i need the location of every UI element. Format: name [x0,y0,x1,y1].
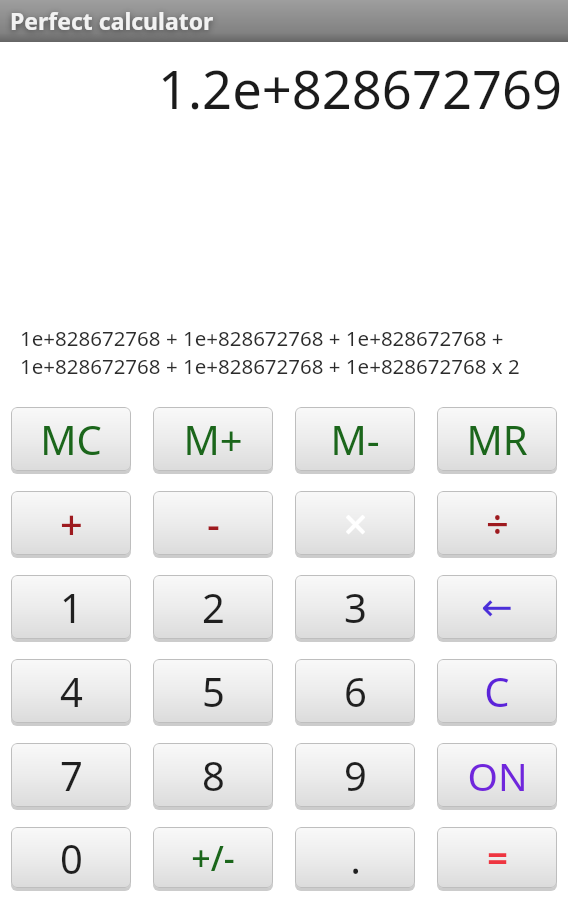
staticText: ON [467,749,528,802]
button[interactable]: 8 [153,743,273,807]
button[interactable]: 3 [295,575,415,639]
staticText: M- [330,412,380,466]
button[interactable]: 4 [11,659,131,723]
button[interactable]: × [295,491,415,555]
staticText: - [207,496,220,550]
staticText: ÷ [486,496,509,550]
staticText: MC [40,412,102,466]
staticText: 3 [344,580,367,634]
button[interactable]: M+ [153,407,273,471]
staticText: 4 [60,664,83,718]
button[interactable]: 6 [295,659,415,723]
staticText: 1 [60,580,83,634]
staticText: 1e+828672768 + 1e+828672768 + 1e+8286727… [20,352,520,380]
staticText: ← [481,585,513,629]
button[interactable]: ON [437,743,557,807]
staticText: Perfect calculator [10,5,214,36]
staticText: 1.2e+828672769 [158,53,563,125]
staticText: MR [466,412,528,466]
button[interactable]: ← [437,575,557,639]
staticText: 1e+828672768 + 1e+828672768 + 1e+8286727… [20,324,504,352]
button[interactable]: . [295,827,415,888]
staticText: M+ [183,412,243,466]
staticText: + [60,496,83,550]
staticText: C [484,664,510,718]
staticText: 5 [202,664,225,718]
staticText: 2 [202,580,225,634]
button[interactable]: MR [437,407,557,471]
staticText: 0 [60,831,83,885]
button[interactable]: +/- [153,827,273,888]
button[interactable]: MC [11,407,131,471]
button[interactable]: 0 [11,827,131,888]
staticText: 9 [344,748,367,802]
staticText: × [343,494,368,553]
button[interactable]: ÷ [437,491,557,555]
staticText: +/- [191,835,235,881]
button[interactable]: C [437,659,557,723]
staticText: 7 [60,748,83,802]
button[interactable]: + [11,491,131,555]
button[interactable]: 1 [11,575,131,639]
button[interactable]: 5 [153,659,273,723]
button[interactable]: 7 [11,743,131,807]
staticText: = [487,833,508,882]
button[interactable]: 2 [153,575,273,639]
button[interactable]: - [153,491,273,555]
staticText: 8 [202,748,225,802]
staticText: 6 [344,664,367,718]
button[interactable]: M- [295,407,415,471]
button[interactable]: 9 [295,743,415,807]
button[interactable]: = [437,827,557,888]
staticText: . [350,831,361,885]
